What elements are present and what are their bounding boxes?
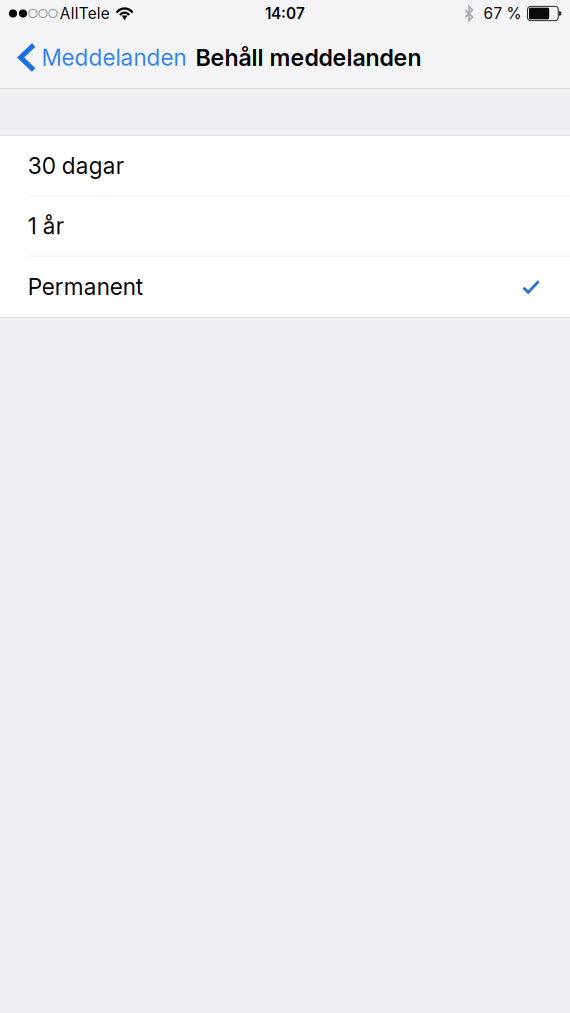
staticText: Behåll meddelanden: [195, 43, 421, 72]
staticText: 67 %: [483, 4, 521, 23]
button[interactable]: 1 år: [0, 196, 570, 257]
staticText: 14:07: [265, 4, 305, 23]
staticText: Meddelanden: [41, 44, 186, 71]
button[interactable]: 30 dagar: [0, 136, 570, 196]
staticText: AllTele: [60, 4, 110, 23]
staticText: 30 dagar: [28, 152, 124, 179]
button[interactable]: Permanent: [0, 257, 570, 317]
button[interactable]: Meddelanden: [0, 27, 195, 88]
staticText: Permanent: [28, 273, 143, 300]
staticText: 1 år: [28, 212, 64, 240]
